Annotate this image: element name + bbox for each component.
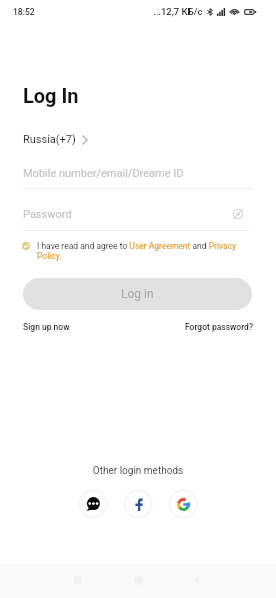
- button[interactable]: Forgot password?: [185, 322, 254, 332]
- staticText: Mobile number/email/Dreame ID: [23, 167, 184, 180]
- button[interactable]: Log in with Facebook: [123, 489, 153, 519]
- staticText: Password: [23, 208, 72, 221]
- staticText: Log in: [121, 287, 154, 301]
- button[interactable]: Show password: [231, 207, 245, 221]
- button[interactable]: Log in: [23, 278, 252, 310]
- staticText: 18:52: [13, 7, 35, 17]
- button[interactable]: Log in with Google: [168, 489, 198, 519]
- button[interactable]: Sign up now: [23, 322, 70, 332]
- button[interactable]: Log in with chat: [78, 489, 108, 519]
- staticText: ...12,7 КБ/c: [153, 6, 203, 17]
- staticText: I have read and agree to User Agreement …: [37, 241, 252, 261]
- staticText: Other login methods: [0, 465, 276, 477]
- staticText: Log In: [23, 84, 79, 107]
- staticText: Russia(+7): [23, 133, 76, 146]
- button[interactable]: Russia(+7): [23, 133, 88, 146]
